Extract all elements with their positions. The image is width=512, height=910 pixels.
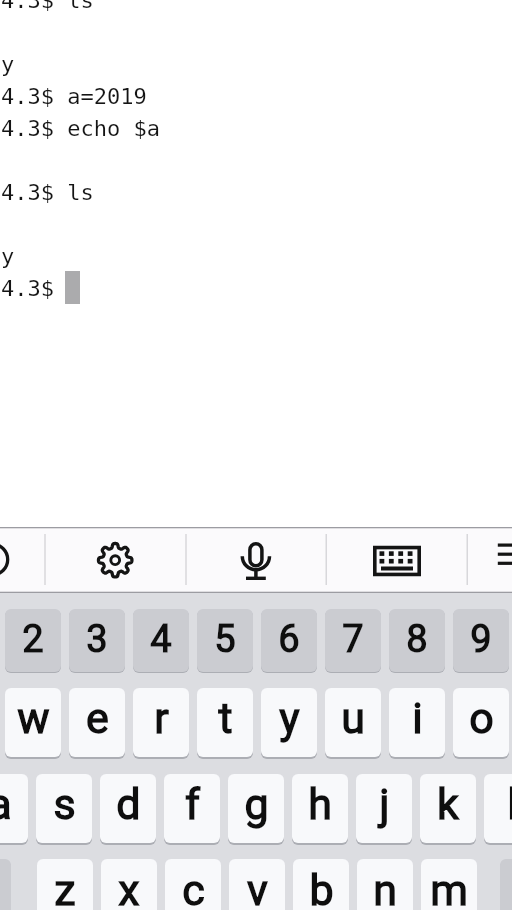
staticText: 7 [342,617,364,662]
button[interactable]: x [101,859,157,910]
staticText: 2 [22,617,44,662]
staticText: z [54,865,76,910]
button[interactable]: 9 [453,609,509,672]
staticText: 9 [470,617,492,662]
button[interactable]: l [484,774,512,843]
staticText: 4.3$ ls [1,180,94,206]
staticText: 4.3$ [1,276,68,302]
staticText: 8 [406,617,428,662]
staticText: y [1,52,15,78]
button[interactable]: a [0,774,28,843]
button[interactable]: f [164,774,220,843]
button[interactable]: Menu [467,527,512,592]
button[interactable]: d [100,774,156,843]
button[interactable]: s [36,774,92,843]
staticText: n [373,865,397,910]
button[interactable]: 5 [197,609,253,672]
button[interactable]: k [420,774,476,843]
staticText: t [218,693,233,743]
button[interactable]: j [356,774,412,843]
button[interactable]: 3 [69,609,125,672]
staticText: y [1,244,15,270]
staticText: 4.3$ a=2019 [1,84,147,110]
button[interactable]: u [325,688,381,757]
staticText: 3 [86,617,108,662]
staticText: 4 [150,617,172,662]
button[interactable]: w [5,688,61,757]
staticText: a [0,779,12,829]
staticText: k [437,779,459,829]
button[interactable]: i [389,688,445,757]
staticText: h [308,779,332,829]
staticText: l [507,779,512,829]
staticText: 5 [214,617,236,662]
staticText: s [53,779,76,829]
staticText: i [412,693,423,743]
button[interactable]: m [421,859,477,910]
button[interactable]: n [357,859,413,910]
staticText: 6 [278,617,300,662]
button[interactable]: z [37,859,93,910]
button[interactable]: c [165,859,221,910]
button[interactable]: b [293,859,349,910]
staticText: y [279,693,300,743]
other: Terminal toolbar [0,527,512,593]
button[interactable]: o [453,688,509,757]
staticText: v [247,865,268,910]
button[interactable]: h [292,774,348,843]
staticText: x [118,865,140,910]
button[interactable]: 4 [133,609,189,672]
button[interactable]: y [261,688,317,757]
staticText: w [17,693,50,743]
staticText: g [244,779,269,829]
button[interactable]: v [229,859,285,910]
staticText: e [86,693,109,743]
button[interactable]: Toggle keyboard [326,527,467,592]
staticText: c [182,865,205,910]
button[interactable]: 7 [325,609,381,672]
staticText: o [469,693,494,743]
staticText: d [116,779,141,829]
button[interactable]: Escape [0,527,44,592]
staticText: j [379,779,390,829]
staticText: f [185,779,200,829]
staticText: 4.3$ ls [1,0,94,14]
button[interactable]: r [133,688,189,757]
button[interactable]: e [69,688,125,757]
button[interactable]: Settings [45,527,186,592]
staticText: u [341,693,365,743]
button[interactable]: Voice input [186,527,326,592]
button[interactable]: 8 [389,609,445,672]
button[interactable]: 6 [261,609,317,672]
button[interactable]: g [228,774,284,843]
button[interactable]: 2 [5,609,61,672]
staticText: r [154,693,169,743]
staticText: m [430,865,468,910]
staticText: b [309,865,334,910]
staticText: 4.3$ echo $a [1,116,160,142]
button[interactable]: t [197,688,253,757]
